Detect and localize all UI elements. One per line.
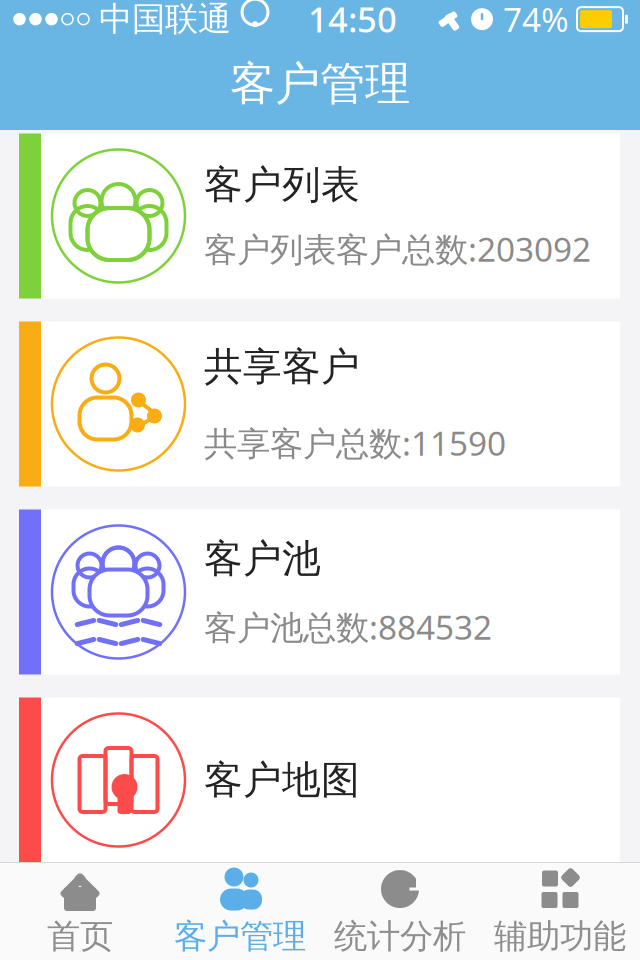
- staticText: 客户列表客户总数:203092: [204, 227, 591, 271]
- staticText: 首页: [47, 916, 113, 957]
- button[interactable]: 客户池: [19, 509, 620, 674]
- staticText: 辅助功能: [494, 916, 626, 957]
- staticText: 客户管理: [174, 916, 306, 957]
- staticText: 共享客户: [204, 343, 360, 391]
- staticText: 共享客户总数:11590: [204, 421, 506, 465]
- button[interactable]: 辅助功能: [480, 863, 640, 960]
- button[interactable]: 客户地图: [19, 697, 620, 862]
- staticText: 客户列表: [204, 161, 360, 209]
- staticText: 14:50: [308, 0, 397, 42]
- staticText: 中国联通: [99, 0, 231, 40]
- staticText: 74%: [503, 0, 569, 41]
- staticText: 客户池总数:884532: [204, 605, 492, 649]
- button[interactable]: 客户管理: [160, 863, 320, 960]
- button[interactable]: 统计分析: [320, 863, 480, 960]
- button[interactable]: 共享客户: [19, 321, 620, 486]
- staticText: 统计分析: [334, 916, 466, 957]
- staticText: 客户池: [204, 535, 321, 583]
- button[interactable]: 客户列表: [19, 133, 620, 298]
- button[interactable]: 首页: [0, 863, 160, 960]
- staticText: 客户管理: [230, 56, 410, 112]
- staticText: 客户地图: [204, 756, 360, 804]
